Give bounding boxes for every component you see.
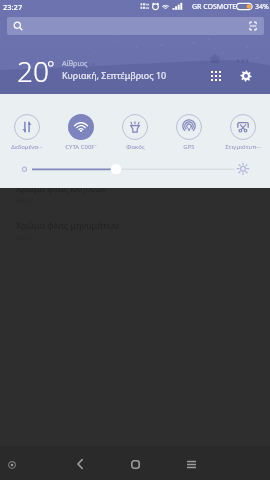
staticText: Αίθριος [62,58,88,68]
button[interactable]: CYTA C00F˘ [54,114,108,151]
button[interactable]: Φακός [108,114,162,151]
button[interactable]: 20 [17,52,49,90]
button[interactable]: Settings [235,65,257,87]
staticText: GR COSMOTE [192,2,237,12]
button[interactable]: Χρώμα φλας κλήσεων [0,182,270,206]
button[interactable]: Back [66,450,94,478]
button[interactable]: Home [121,450,149,478]
button[interactable]: Scan code [245,18,261,34]
button[interactable]: GPS [162,114,216,151]
staticText: Χρώμα φλας κλήσεων [16,182,107,194]
button[interactable]: Recents [177,450,205,478]
button[interactable]: Στιγμιότυπ··· [216,114,270,151]
staticText: Στιγμιότυπ··· [225,143,261,151]
staticText: 23:27 [3,2,23,12]
staticText: Δεδομένα··· [11,143,43,151]
button[interactable]: Assistant [2,455,21,474]
staticText: Κυριακή, Σεπτέμβριος 10 [62,69,167,81]
staticText: GPS [183,143,195,151]
staticText: CYTA C00F˘ [65,143,97,151]
button[interactable]: Brightness [0,164,270,186]
button[interactable]: Search [7,17,264,35]
staticText: 34% [255,2,269,12]
staticText: 20 [17,52,49,90]
button[interactable]: Apps [205,65,227,87]
staticText: Φακός [126,143,145,151]
staticText: Χρώμα φλας μηνυμάτων [16,219,119,231]
button[interactable]: Δεδομένα··· [0,114,54,151]
